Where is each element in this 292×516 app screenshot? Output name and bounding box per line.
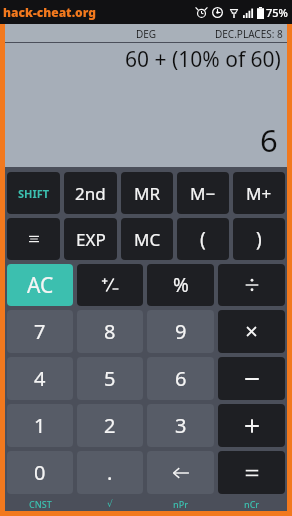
button[interactable]: MR: [121, 172, 173, 214]
staticText: M+: [246, 182, 272, 205]
staticText: 4: [34, 365, 46, 392]
staticText: 6: [260, 119, 278, 161]
button[interactable]: Multiply: [218, 310, 285, 353]
staticText: 1: [34, 412, 46, 439]
button[interactable]: Backspace: [147, 451, 214, 494]
button[interactable]: 0: [7, 451, 73, 494]
button[interactable]: AC: [7, 264, 73, 306]
button[interactable]: Plus minus: [77, 264, 143, 306]
staticText: AC: [27, 271, 54, 300]
button[interactable]: Plus: [218, 404, 285, 447]
button[interactable]: Divide: [218, 264, 285, 306]
staticText: SHIFT: [18, 186, 50, 201]
staticText: hack-cheat.org: [3, 4, 96, 20]
staticText: 3: [175, 412, 187, 439]
staticText: CNST: [29, 498, 52, 510]
staticText: DEG: [136, 27, 157, 41]
staticText: 6: [175, 365, 187, 392]
staticText: 60 + (10% of 60): [125, 45, 281, 74]
staticText: 5: [104, 365, 116, 392]
button[interactable]: 2: [77, 404, 143, 447]
staticText: nPr: [173, 498, 188, 510]
staticText: DEC.PLACES: 8: [215, 27, 283, 41]
button[interactable]: (: [177, 218, 229, 260]
button[interactable]: 5: [77, 357, 143, 400]
staticText: 0: [34, 459, 46, 486]
button[interactable]: .: [77, 451, 143, 494]
button[interactable]: %: [147, 264, 214, 306]
staticText: MC: [134, 228, 161, 251]
button[interactable]: 6: [147, 357, 214, 400]
staticText: nCr: [244, 498, 260, 510]
button[interactable]: 1: [7, 404, 73, 447]
staticText: 9: [175, 318, 187, 345]
button[interactable]: Minus: [218, 357, 285, 400]
staticText: %: [173, 272, 189, 298]
button[interactable]: ): [233, 218, 285, 260]
button[interactable]: Equals: [218, 451, 285, 494]
button[interactable]: Menu: [7, 218, 60, 260]
staticText: √: [107, 499, 113, 509]
staticText: .: [107, 459, 113, 486]
button[interactable]: 2nd: [64, 172, 117, 214]
button[interactable]: SHIFT: [7, 172, 60, 214]
staticText: 7: [34, 318, 46, 345]
staticText: M−: [190, 182, 216, 205]
button[interactable]: MC: [121, 218, 173, 260]
staticText: ): [256, 226, 262, 252]
staticText: 75%: [266, 5, 288, 20]
button[interactable]: 4: [7, 357, 73, 400]
button[interactable]: 9: [147, 310, 214, 353]
staticText: 2nd: [75, 182, 106, 205]
button[interactable]: 8: [77, 310, 143, 353]
button[interactable]: M−: [177, 172, 229, 214]
staticText: EXP: [76, 228, 106, 251]
staticText: MR: [134, 182, 160, 205]
button[interactable]: EXP: [64, 218, 117, 260]
button[interactable]: 3: [147, 404, 214, 447]
button[interactable]: M+: [233, 172, 285, 214]
button[interactable]: 7: [7, 310, 73, 353]
staticText: (: [200, 226, 206, 252]
staticText: 2: [104, 412, 116, 439]
staticText: 8: [104, 318, 116, 345]
